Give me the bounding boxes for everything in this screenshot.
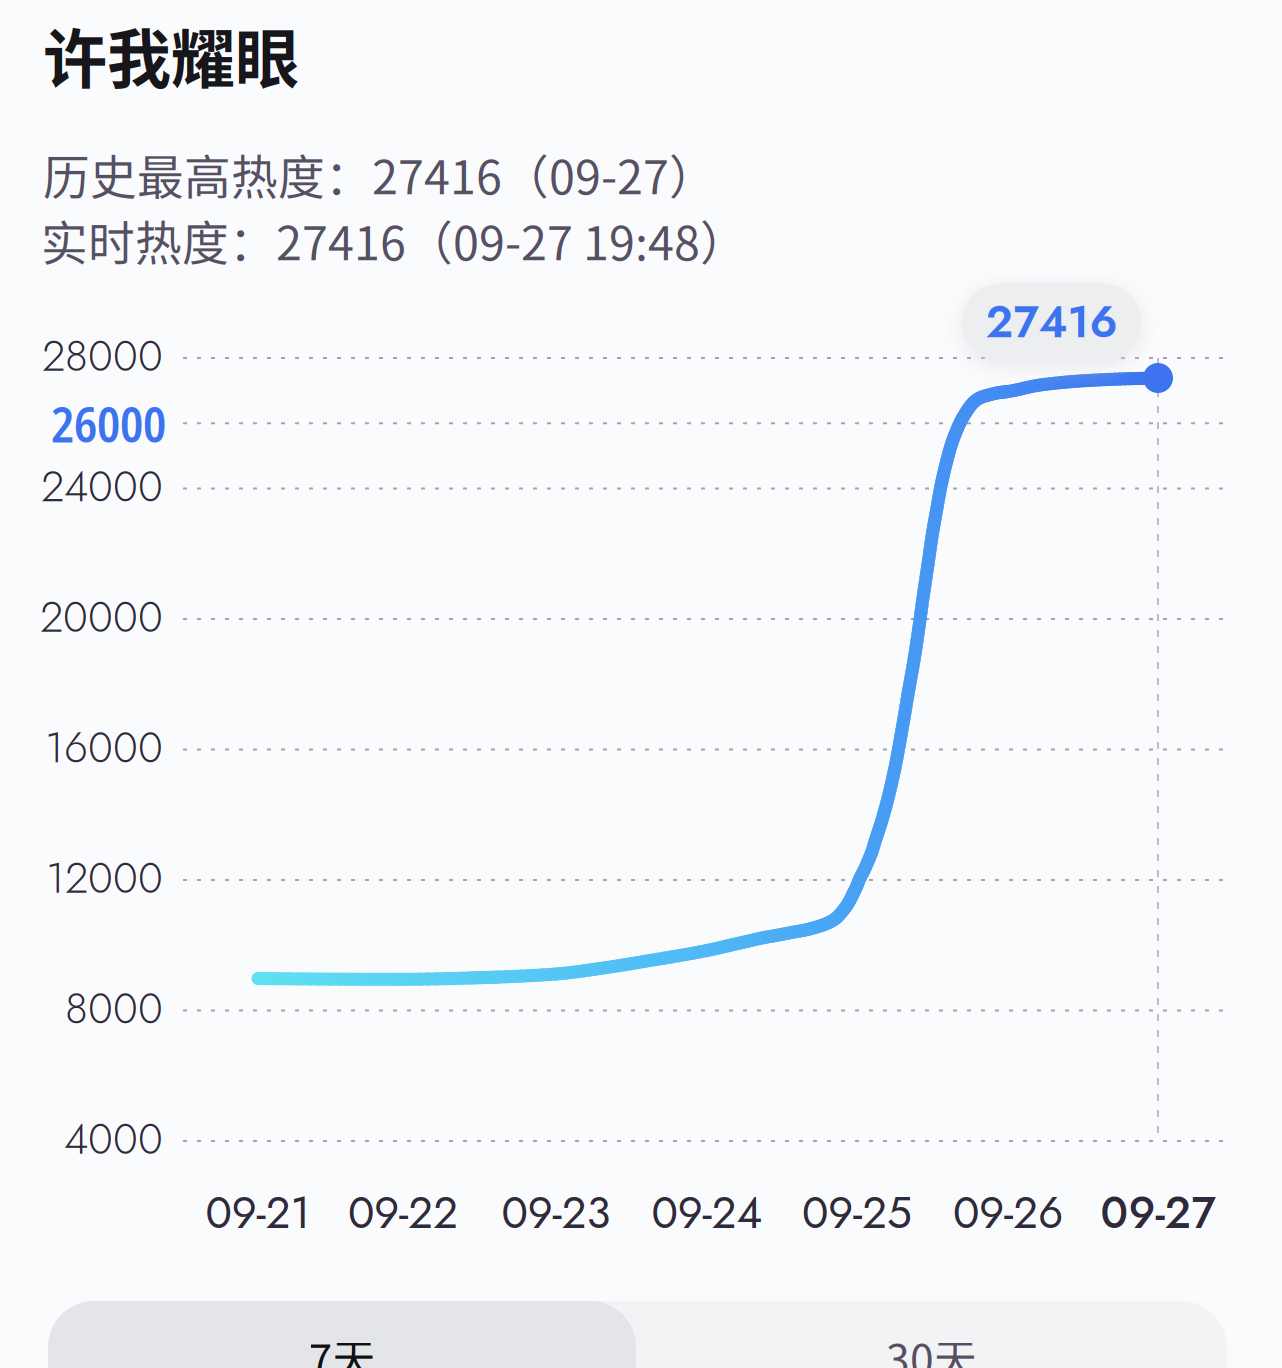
staticText: 许我耀眼 [43, 8, 299, 101]
staticText: 09-24 [651, 1181, 762, 1245]
staticText: 27416 [985, 290, 1117, 354]
staticText: 28000 [42, 325, 163, 387]
staticText: 8000 [65, 977, 163, 1039]
button[interactable]: 7天 [48, 1301, 636, 1368]
staticText: 历史最高热度：27416（09-27） [43, 140, 716, 208]
staticText: 实时热度：27416（09-27 19:48） [41, 206, 747, 274]
staticText: 12000 [46, 847, 163, 909]
staticText: 30天 [886, 1326, 977, 1368]
staticText: 4000 [64, 1108, 163, 1170]
button[interactable]: 30天 [636, 1301, 1227, 1368]
staticText: 20000 [40, 586, 163, 648]
staticText: 24000 [41, 455, 163, 517]
staticText: 09-25 [802, 1181, 912, 1245]
staticText: 09-27 [1100, 1181, 1215, 1245]
staticText: 26000 [51, 391, 166, 457]
staticText: 16000 [45, 716, 163, 778]
staticText: 09-22 [348, 1181, 458, 1245]
staticText: 09-26 [953, 1181, 1063, 1245]
staticText: 09-23 [501, 1181, 610, 1245]
staticText: 7天 [308, 1326, 375, 1368]
staticText: 09-21 [205, 1181, 310, 1245]
